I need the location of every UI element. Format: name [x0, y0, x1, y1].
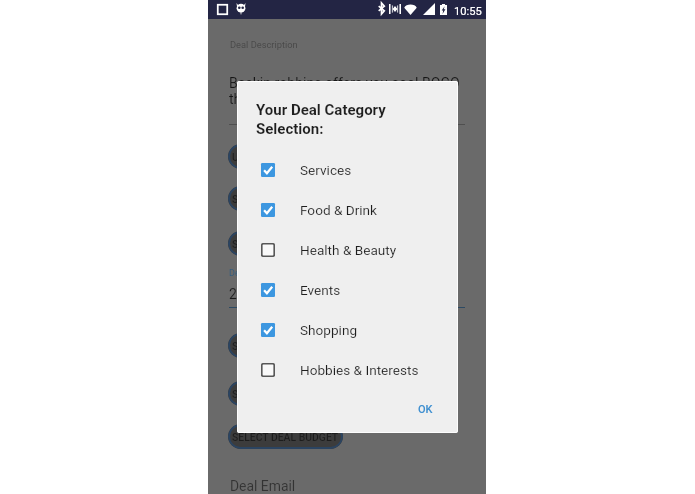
staticText: Deal Quantity: [229, 268, 283, 279]
staticText: Services: [300, 162, 352, 178]
staticText: SELECT DEAL BUDGET: [232, 431, 339, 443]
staticText: Deal Email: [230, 478, 296, 494]
staticText: Your Deal Category Selection:: [256, 101, 386, 137]
staticText: 10:55: [454, 5, 482, 18]
button[interactable]: SELECT DEAL CATEGORY: [228, 333, 355, 358]
button[interactable]: SELECT END DATE: [228, 231, 323, 256]
button[interactable]: SELECT DEAL TYPE: [228, 381, 328, 406]
staticText: Shopping: [300, 322, 358, 338]
staticText: SELECT DEAL TYPE: [232, 388, 324, 400]
button[interactable]: Services: [237, 150, 458, 190]
staticText: SELECT END DATE: [232, 238, 319, 250]
staticText: UPLOAD DEAL IMAGE: [232, 151, 334, 163]
staticText: SELECT START DATE: [232, 193, 330, 205]
staticText: SELECT DEAL CATEGORY: [232, 340, 351, 352]
button[interactable]: Food & Drink: [237, 190, 458, 230]
button[interactable]: UPLOAD DEAL IMAGE: [228, 144, 338, 169]
staticText: Food & Drink: [300, 202, 377, 218]
button[interactable]: OK: [412, 399, 439, 420]
button[interactable]: Hobbies & Interests: [237, 350, 458, 390]
button[interactable]: Events: [237, 270, 458, 310]
button[interactable]: SELECT START DATE: [228, 186, 334, 211]
staticText: Hobbies & Interests: [300, 362, 419, 378]
staticText: Deal Description: [230, 39, 298, 50]
staticText: Baskin robbins offers you cool BOGO this…: [229, 75, 460, 107]
staticText: Events: [300, 282, 341, 298]
staticText: 20: [229, 286, 245, 302]
staticText: OK: [418, 403, 433, 416]
staticText: Health & Beauty: [300, 242, 397, 258]
button[interactable]: SELECT DEAL BUDGET: [228, 424, 343, 449]
button[interactable]: Health & Beauty: [237, 230, 458, 270]
button[interactable]: Shopping: [237, 310, 458, 350]
